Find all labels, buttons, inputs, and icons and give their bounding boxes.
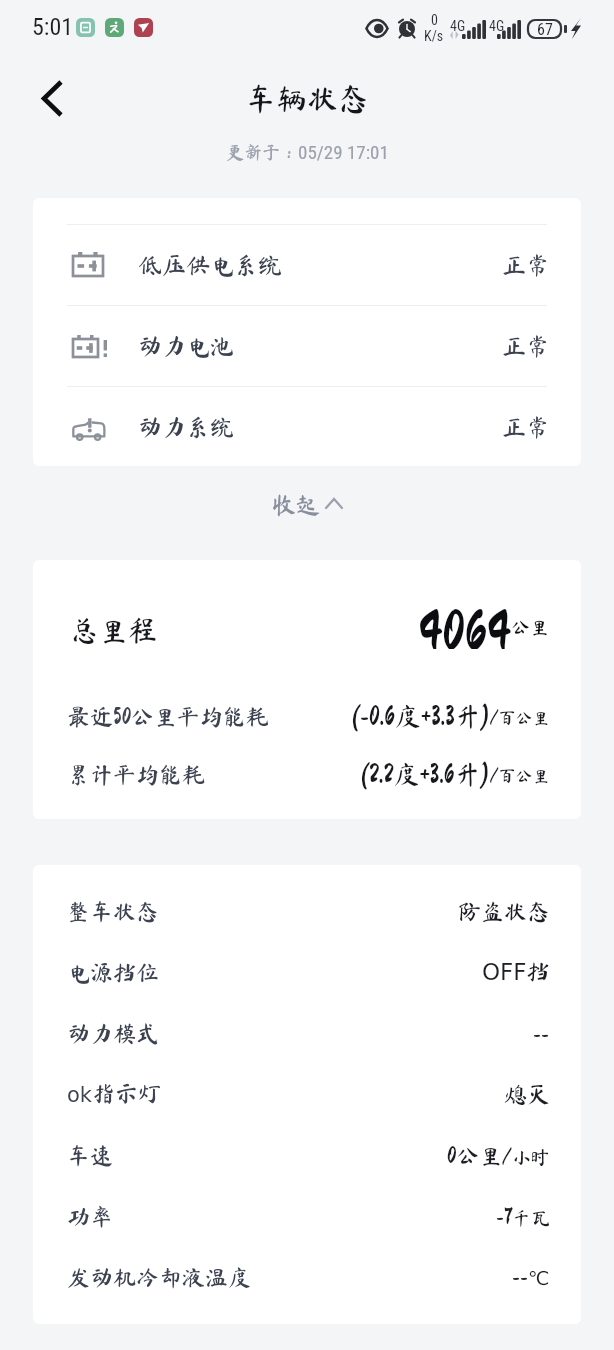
staticText: (-0.6度+3.3升) [351, 703, 490, 729]
button[interactable]: 动力系统 [33, 387, 581, 466]
staticText: 5:01 [32, 13, 74, 41]
staticText: 更新于：05/29 17:01 [226, 141, 389, 163]
staticText: 公里 [511, 617, 550, 636]
button[interactable]: Back [26, 72, 78, 124]
staticText: 动力系统 [138, 415, 234, 439]
staticText: 收起 [272, 493, 320, 517]
staticText: 0 [431, 12, 438, 28]
button[interactable]: 发动机冷却液温度 [33, 1247, 581, 1308]
button[interactable]: 收起 [0, 466, 614, 544]
staticText: 4064 [418, 605, 511, 649]
button[interactable]: 动力模式 [33, 1003, 581, 1064]
staticText: 正常 [502, 334, 550, 358]
staticText: ok指示灯 [67, 1082, 162, 1107]
staticText: 低压供电系统 [138, 253, 282, 277]
staticText: -7千瓦 [496, 1205, 550, 1228]
staticText: 熄灭 [504, 1083, 550, 1106]
staticText: 累计平均能耗 [67, 763, 205, 786]
staticText: 总里程 [70, 615, 158, 644]
staticText: 动力电池 [138, 334, 234, 358]
staticText: /百公里 [490, 709, 550, 726]
staticText: 最近50公里平均能耗 [67, 705, 269, 728]
staticText: 车速 [67, 1144, 113, 1167]
button[interactable]: 车速 [33, 1125, 581, 1186]
button[interactable]: 电源挡位 [33, 942, 581, 1003]
staticText: 4G [450, 18, 466, 34]
staticText: /百公里 [490, 767, 550, 784]
staticText: --℃ [512, 1265, 550, 1290]
staticText: 功率 [67, 1205, 113, 1228]
staticText: -- [533, 1022, 550, 1045]
staticText: OFF挡 [482, 959, 550, 986]
staticText: 4G [489, 18, 505, 34]
staticText: 正常 [502, 415, 550, 439]
button[interactable]: 低压供电系统 [33, 225, 581, 305]
staticText: K/s [424, 28, 444, 44]
staticText: 电源挡位 [67, 961, 159, 984]
staticText: 正常 [502, 253, 550, 277]
staticText: 发动机冷却液温度 [67, 1266, 251, 1289]
staticText: 动力模式 [67, 1022, 159, 1045]
staticText: (2.2度+3.6升) [360, 761, 490, 787]
staticText: 车辆状态 [245, 83, 369, 114]
button[interactable]: 功率 [33, 1186, 581, 1247]
button[interactable]: 整车状态 [33, 881, 581, 942]
staticText: 防盗状态 [458, 900, 550, 923]
staticText: 67 [537, 20, 553, 39]
staticText: 0公里/小时 [447, 1144, 550, 1167]
staticText: 整车状态 [67, 900, 159, 923]
button[interactable]: ok指示灯 [33, 1064, 581, 1125]
button[interactable]: 动力电池 [33, 306, 581, 386]
